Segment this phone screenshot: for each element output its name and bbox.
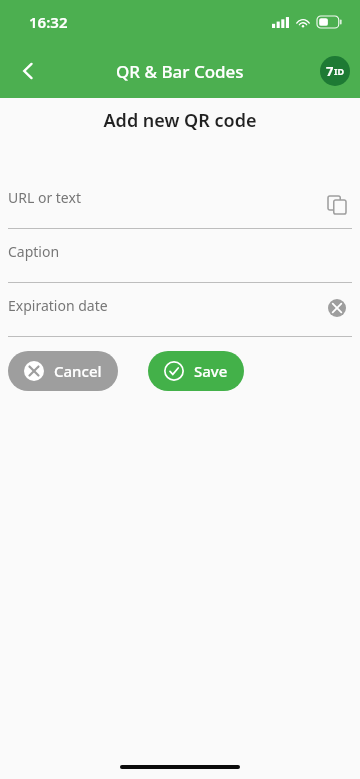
- button[interactable]: Copy: [322, 190, 352, 220]
- staticText: 16:32: [29, 12, 68, 32]
- staticText: ID: [334, 65, 345, 77]
- button[interactable]: Save: [148, 351, 244, 391]
- staticText: URL or text: [8, 188, 81, 207]
- staticText: Expiration date: [8, 296, 108, 315]
- staticText: Add new QR code: [0, 108, 360, 133]
- button[interactable]: Back: [6, 49, 50, 93]
- button[interactable]: Caption: [0, 229, 360, 282]
- button[interactable]: Clear: [322, 293, 352, 323]
- button[interactable]: 7ID profile: [320, 56, 350, 86]
- staticText: Caption: [8, 242, 60, 261]
- staticText: Save: [194, 361, 228, 381]
- button[interactable]: Expiration date: [0, 283, 360, 336]
- button[interactable]: URL or text: [0, 175, 360, 228]
- staticText: QR & Bar Codes: [116, 60, 244, 83]
- button[interactable]: Cancel: [8, 351, 118, 391]
- staticText: Cancel: [54, 361, 102, 381]
- staticText: 7: [326, 62, 334, 80]
